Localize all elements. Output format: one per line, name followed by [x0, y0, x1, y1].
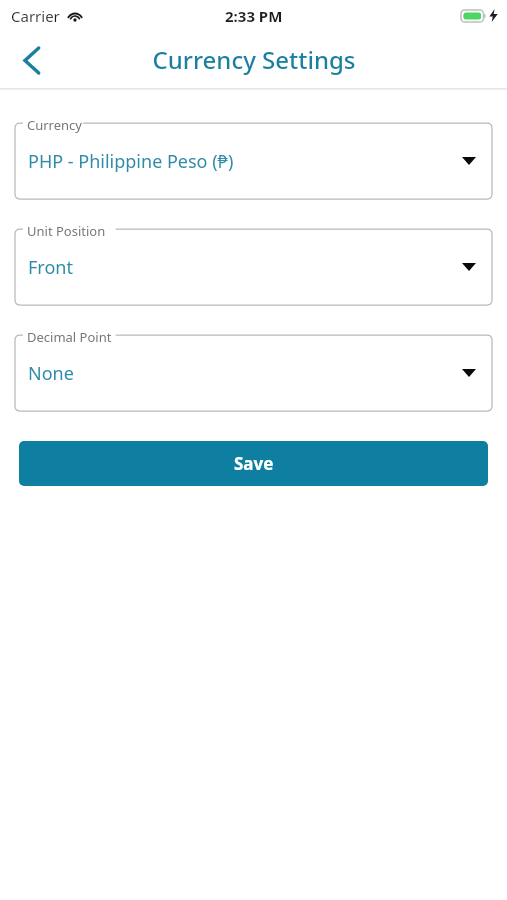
staticText: Decimal Point [27, 328, 112, 346]
button[interactable]: Currency [15, 117, 492, 199]
staticText: Save [234, 452, 274, 475]
button[interactable]: Save [19, 441, 488, 486]
staticText: 2:33 PM [225, 6, 283, 26]
staticText: PHP - Philippine Peso (₱) [28, 149, 234, 174]
staticText: Carrier [11, 6, 60, 26]
staticText: Currency Settings [152, 43, 356, 76]
staticText: None [28, 361, 74, 386]
staticText: Front [28, 255, 73, 280]
staticText: Currency [27, 116, 82, 134]
button[interactable]: Decimal Point [15, 329, 492, 411]
staticText: Unit Position [27, 222, 106, 240]
button[interactable]: Unit Position [15, 223, 492, 305]
button[interactable]: Back [12, 40, 52, 80]
